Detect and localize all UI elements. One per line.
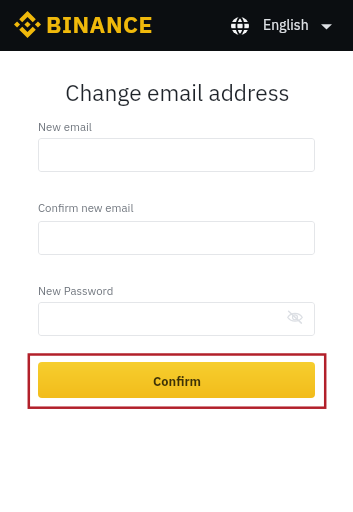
button[interactable]: Language: [225, 11, 338, 41]
other: Show password: [287, 309, 303, 325]
staticText: Change email address: [1, 78, 353, 108]
button[interactable]: [38, 138, 315, 172]
staticText: English: [263, 16, 309, 34]
staticText: New email: [38, 119, 92, 134]
staticText: New Password: [38, 283, 114, 298]
button[interactable]: Confirm: [38, 362, 315, 398]
button[interactable]: BINANCE: [14, 9, 154, 39]
staticText: Confirm: [153, 373, 202, 390]
staticText: BINANCE: [46, 9, 154, 39]
button[interactable]: Show password: [287, 309, 303, 325]
button[interactable]: Show password: [38, 302, 315, 336]
staticText: Confirm new email: [38, 200, 134, 215]
other: Language: [231, 17, 249, 35]
button[interactable]: [38, 221, 315, 255]
